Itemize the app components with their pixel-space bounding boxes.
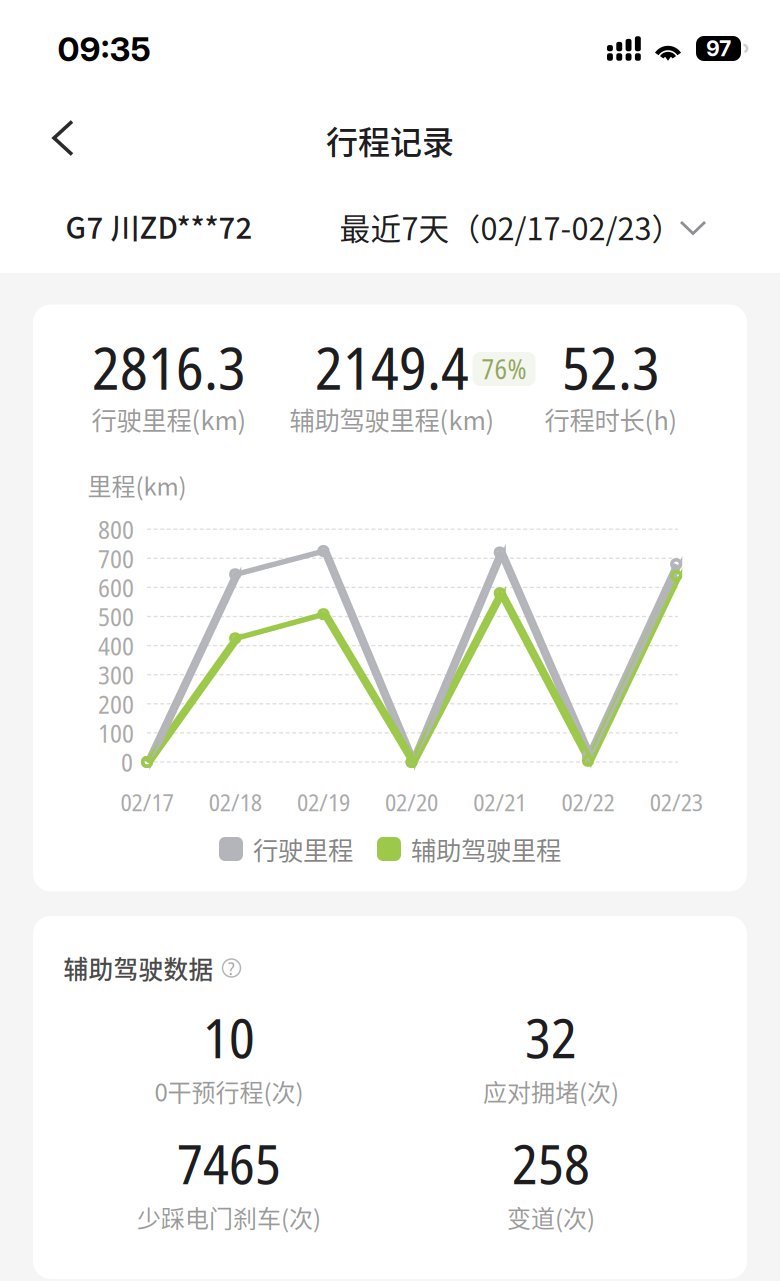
button[interactable]: Change date range — [666, 204, 721, 252]
staticText: 02/19 — [297, 786, 350, 818]
staticText: 400 — [98, 628, 134, 663]
staticText: 最近7天（02/17-02/23） — [339, 205, 682, 249]
staticText: 02/17 — [120, 786, 173, 818]
staticText: 应对拥堵(次) — [483, 1074, 619, 1108]
staticText: 行程时长(h) — [544, 401, 677, 437]
staticText: 32 — [525, 1000, 577, 1074]
staticText: 2816.3 — [92, 327, 246, 407]
staticText: 行程记录 — [326, 117, 454, 163]
staticText: 0 — [121, 745, 133, 779]
staticText: 100 — [98, 716, 134, 750]
staticText: 里程(km) — [87, 468, 186, 502]
staticText: 500 — [98, 599, 134, 634]
staticText: 2149.4 — [315, 327, 469, 407]
staticText: 02/21 — [473, 786, 526, 818]
staticText: 76% — [481, 351, 526, 387]
button[interactable]: Back — [30, 99, 96, 177]
staticText: 行驶里程 — [253, 831, 353, 867]
staticText: 700 — [98, 541, 134, 575]
staticText: 7465 — [177, 1126, 281, 1200]
staticText: 10 — [203, 1000, 255, 1074]
staticText: 行驶里程(km) — [91, 401, 246, 437]
staticText: 800 — [98, 512, 134, 546]
staticText: 600 — [98, 570, 134, 605]
staticText: 09:35 — [57, 29, 150, 69]
button[interactable]: 最近7天（02/17-02/23） — [339, 191, 682, 263]
staticText: 02/23 — [650, 786, 703, 818]
staticText: 97 — [706, 36, 731, 61]
staticText: 变道(次) — [507, 1200, 595, 1234]
staticText: 02/20 — [385, 786, 438, 818]
staticText: 少踩电门刹车(次) — [137, 1200, 321, 1234]
staticText: 辅助驾驶数据 — [63, 950, 213, 986]
staticText: 52.3 — [562, 327, 660, 407]
staticText: 258 — [512, 1126, 590, 1200]
button[interactable]: Help — [220, 957, 242, 979]
staticText: 300 — [98, 657, 134, 692]
staticText: 辅助驾驶里程(km) — [289, 401, 494, 437]
staticText: 200 — [98, 686, 134, 721]
staticText: 辅助驾驶里程 — [411, 831, 561, 867]
staticText: G7 川ZD***72 — [65, 205, 252, 247]
staticText: 0干预行程(次) — [154, 1074, 303, 1108]
staticText: ? — [228, 955, 235, 981]
staticText: 02/22 — [561, 786, 614, 818]
staticText: 02/18 — [209, 786, 262, 818]
